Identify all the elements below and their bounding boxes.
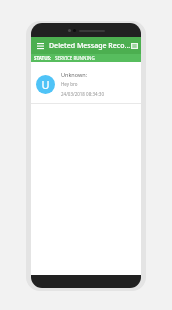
staticText: U bbox=[41, 77, 50, 92]
button[interactable]: More options bbox=[131, 40, 138, 52]
button[interactable]: U bbox=[31, 64, 141, 104]
staticText: Hey bro bbox=[61, 81, 78, 87]
staticText: SERVICE RUNNING bbox=[55, 55, 95, 61]
staticText: STATUS: bbox=[34, 55, 52, 61]
staticText: Deleted Message Reco... bbox=[49, 41, 131, 51]
staticText: 24/03/2018 08:34:30 bbox=[61, 91, 104, 97]
button[interactable]: Open navigation menu bbox=[34, 40, 46, 52]
staticText: Unknown: bbox=[61, 71, 88, 78]
